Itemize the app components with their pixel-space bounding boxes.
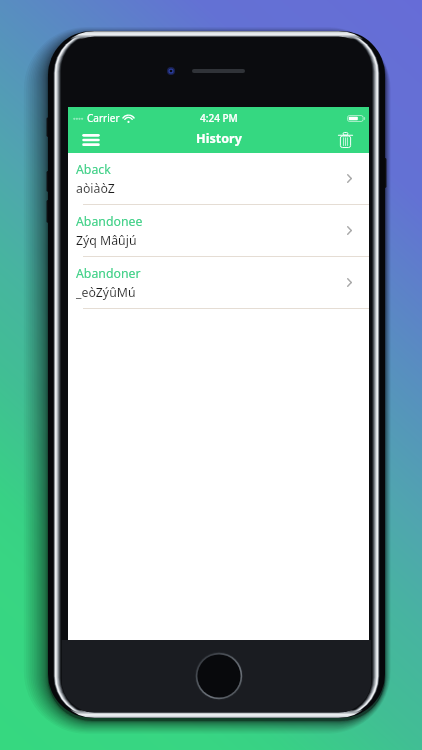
staticText: History xyxy=(196,130,242,147)
button[interactable]: Abandoner xyxy=(68,257,369,308)
staticText: Abandonee xyxy=(76,213,143,230)
button[interactable]: Menu xyxy=(68,127,113,153)
staticText: aòiàòZ xyxy=(76,180,115,197)
staticText: _eòZýûMú xyxy=(76,284,136,301)
button[interactable]: Abandonee xyxy=(68,205,369,256)
button[interactable]: Aback xyxy=(68,153,369,204)
staticText: Aback xyxy=(76,161,111,178)
staticText: 4:24 PM xyxy=(200,111,238,125)
staticText: Abandoner xyxy=(76,265,141,282)
button[interactable]: Delete history xyxy=(324,127,369,153)
staticText: Zýq Mâûjú xyxy=(76,232,137,249)
staticText: Carrier xyxy=(87,111,120,125)
